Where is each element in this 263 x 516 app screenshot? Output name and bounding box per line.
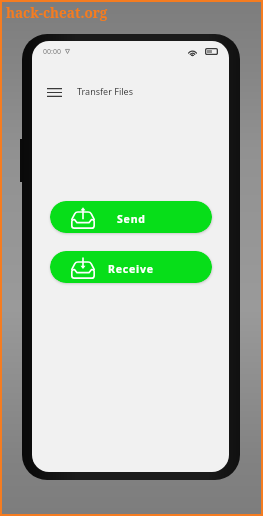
button[interactable]: Send (50, 201, 212, 233)
staticText: 00:00 (43, 47, 61, 57)
staticText: Transfer Files (77, 85, 133, 97)
button[interactable]: Receive (50, 251, 212, 283)
button[interactable]: Open navigation menu (45, 83, 64, 101)
staticText: Receive (108, 262, 154, 276)
staticText: Send (117, 212, 146, 226)
staticText: hack-cheat.org (6, 4, 108, 22)
